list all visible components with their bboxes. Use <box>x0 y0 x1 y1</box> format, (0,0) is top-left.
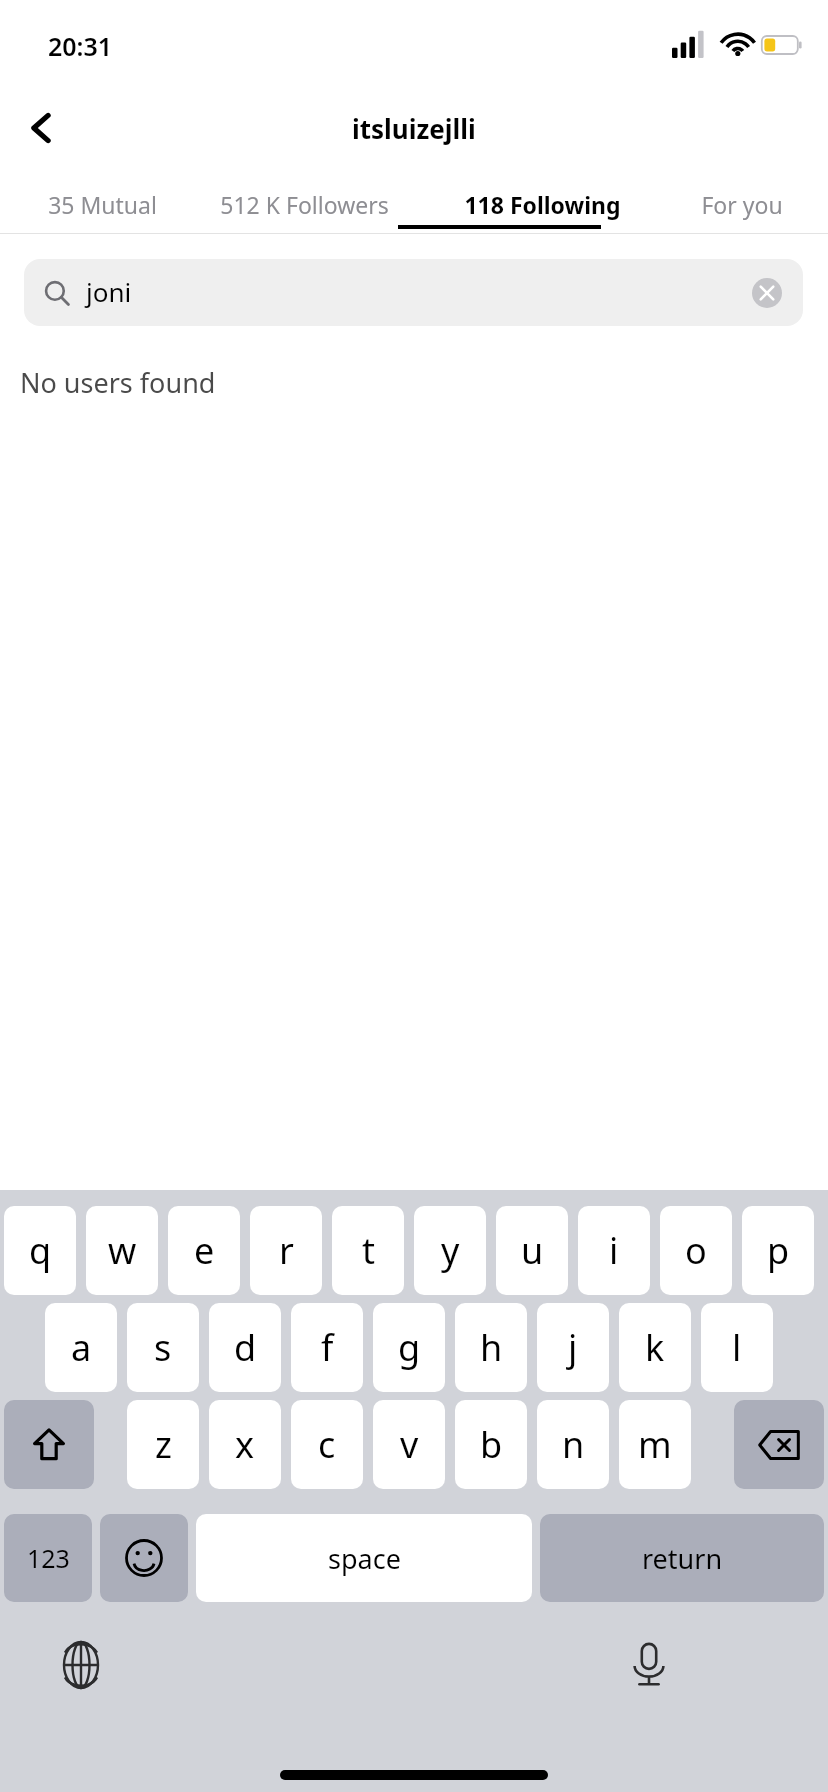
staticText: h <box>480 1323 503 1372</box>
button[interactable]: n <box>537 1400 609 1489</box>
staticText: n <box>562 1420 585 1469</box>
button[interactable]: Emoji <box>100 1514 188 1602</box>
button[interactable]: j <box>537 1303 609 1392</box>
staticText: o <box>685 1226 707 1275</box>
staticText: itsluizejlli <box>352 111 476 146</box>
button[interactable]: b <box>455 1400 527 1489</box>
button[interactable]: joni <box>24 259 803 326</box>
staticText: j <box>568 1323 578 1372</box>
staticText: return <box>642 1540 723 1577</box>
staticText: k <box>645 1323 665 1372</box>
button[interactable]: q <box>4 1206 76 1295</box>
staticText: m <box>638 1420 672 1469</box>
button[interactable]: x <box>209 1400 281 1489</box>
button[interactable]: Dictate <box>616 1632 682 1698</box>
button[interactable]: Clear text <box>745 271 789 315</box>
staticText: u <box>521 1226 544 1275</box>
staticText: c <box>318 1420 336 1469</box>
staticText: x <box>235 1420 255 1469</box>
button[interactable]: w <box>86 1206 158 1295</box>
button[interactable]: z <box>127 1400 199 1489</box>
staticText: 123 <box>27 1541 70 1575</box>
button[interactable]: u <box>496 1206 568 1295</box>
button[interactable]: y <box>414 1206 486 1295</box>
staticText: 20:31 <box>48 29 113 63</box>
staticText: y <box>441 1226 460 1275</box>
staticText: e <box>194 1226 215 1275</box>
button[interactable]: d <box>209 1303 281 1392</box>
button[interactable]: f <box>291 1303 363 1392</box>
button[interactable]: r <box>250 1206 322 1295</box>
button[interactable]: Change keyboard <box>48 1632 114 1698</box>
button[interactable]: 512 K Followers <box>179 168 430 230</box>
button[interactable]: Backspace <box>734 1400 824 1489</box>
staticText: p <box>767 1226 790 1275</box>
staticText: a <box>71 1323 92 1372</box>
staticText: 118 Following <box>464 189 621 220</box>
staticText: v <box>400 1420 419 1469</box>
button[interactable]: o <box>660 1206 732 1295</box>
button[interactable]: 35 Mutual <box>0 168 179 230</box>
staticText: i <box>609 1226 619 1275</box>
button[interactable]: k <box>619 1303 691 1392</box>
staticText: No users found <box>20 364 216 401</box>
button[interactable]: 118 Following <box>430 168 655 230</box>
staticText: r <box>279 1226 294 1275</box>
staticText: s <box>154 1323 172 1372</box>
button[interactable]: t <box>332 1206 404 1295</box>
staticText: space <box>328 1540 401 1577</box>
button[interactable]: For you <box>655 168 828 230</box>
staticText: w <box>108 1226 137 1275</box>
staticText: z <box>155 1420 172 1469</box>
button[interactable]: p <box>742 1206 814 1295</box>
staticText: For you <box>701 189 783 220</box>
staticText: f <box>321 1323 334 1372</box>
button[interactable]: m <box>619 1400 691 1489</box>
staticText: 512 K Followers <box>220 189 389 220</box>
staticText: g <box>398 1323 421 1372</box>
staticText: joni <box>86 274 132 309</box>
button[interactable]: h <box>455 1303 527 1392</box>
button[interactable]: a <box>45 1303 117 1392</box>
staticText: q <box>29 1226 52 1275</box>
staticText: d <box>234 1323 257 1372</box>
button[interactable]: space <box>196 1514 532 1602</box>
button[interactable]: l <box>701 1303 773 1392</box>
button[interactable]: i <box>578 1206 650 1295</box>
button[interactable]: c <box>291 1400 363 1489</box>
button[interactable]: e <box>168 1206 240 1295</box>
button[interactable]: Shift <box>4 1400 94 1489</box>
button[interactable]: Back <box>0 88 84 168</box>
staticText: 35 Mutual <box>48 189 157 220</box>
button[interactable]: s <box>127 1303 199 1392</box>
button[interactable]: v <box>373 1400 445 1489</box>
button[interactable]: Numbers <box>4 1514 92 1602</box>
staticText: t <box>362 1226 375 1275</box>
button[interactable]: g <box>373 1303 445 1392</box>
staticText: b <box>480 1420 503 1469</box>
button[interactable]: return <box>540 1514 824 1602</box>
staticText: l <box>732 1323 742 1372</box>
